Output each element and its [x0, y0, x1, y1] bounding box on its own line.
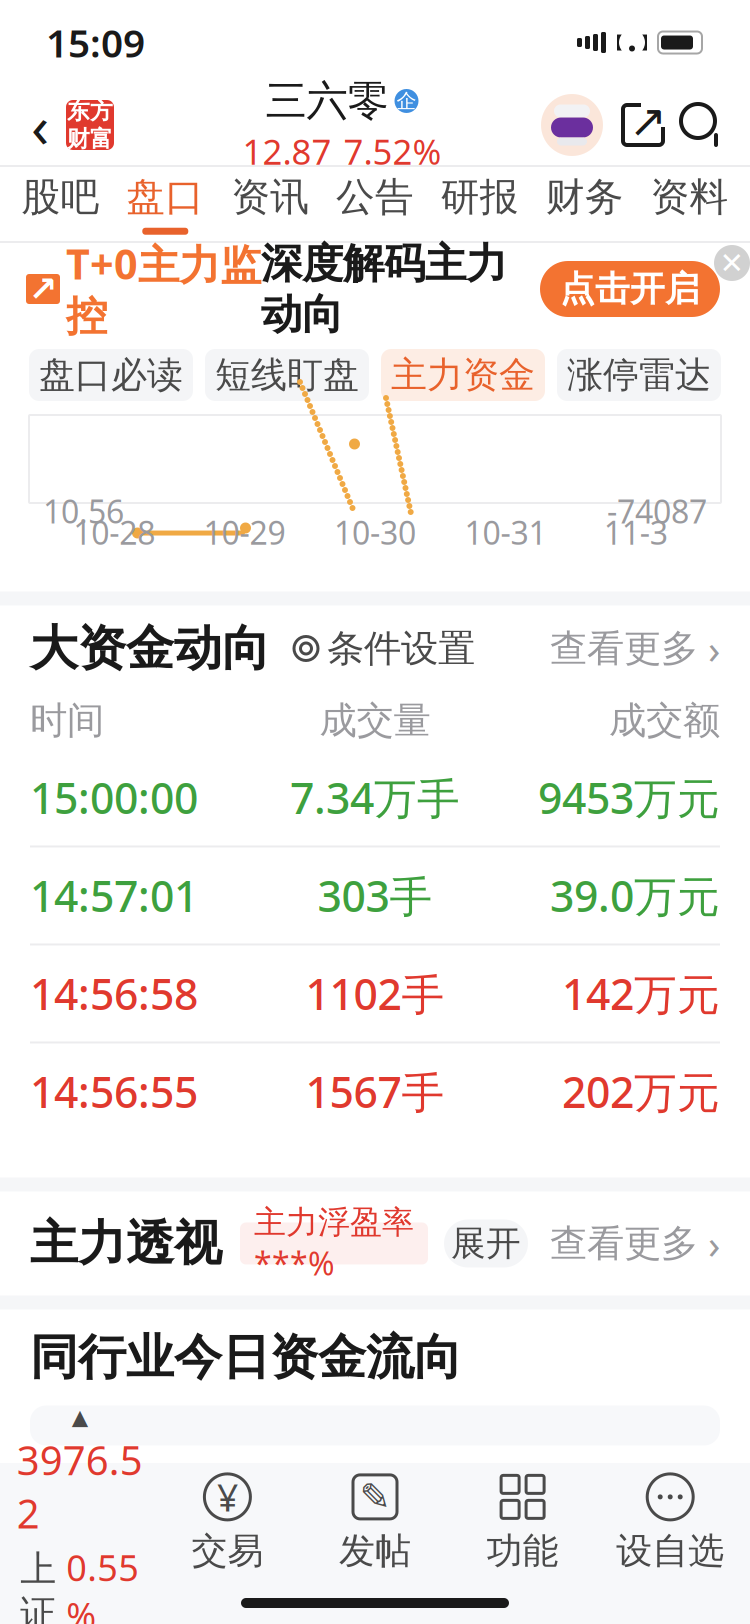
button[interactable]: 智能助手 — [540, 93, 604, 157]
staticText: 9453万元 — [538, 769, 720, 826]
staticText: 深度解码主力动向 — [261, 238, 507, 340]
staticText: 三六零 — [265, 76, 388, 126]
staticText: 资料 — [651, 173, 729, 221]
staticText: 盘口 — [126, 173, 204, 221]
staticText: 303手 — [317, 867, 432, 924]
button[interactable]: 盘口 — [113, 167, 218, 241]
staticText: 同行业今日资金流向 — [30, 1328, 462, 1387]
staticText: 企 — [396, 89, 416, 113]
button[interactable]: 展开 — [428, 1219, 528, 1267]
staticText: 东方 — [67, 97, 113, 125]
staticText: 10-28 — [73, 511, 155, 553]
staticText: 15:00:00 — [30, 769, 198, 826]
staticText: › — [708, 622, 720, 675]
staticText: ¥ — [217, 1472, 238, 1522]
button[interactable]: 分享 — [604, 102, 666, 148]
button[interactable]: 关闭 — [714, 245, 750, 281]
staticText: 15:09 — [46, 17, 145, 68]
button[interactable]: 条件设置 — [270, 626, 475, 671]
button[interactable]: ▲ — [6, 1466, 154, 1578]
staticText: 查看更多 — [550, 1221, 698, 1266]
button[interactable]: 股吧 — [8, 167, 113, 241]
staticText: 成交量 — [319, 698, 430, 743]
staticText: 7.34万手 — [290, 769, 460, 826]
staticText: ‹ — [31, 86, 49, 164]
staticText: 短线盯盘 — [215, 353, 359, 397]
button[interactable]: 涨停雷达 — [557, 349, 721, 401]
staticText: T+0主力监控 — [66, 236, 261, 342]
staticText: 上证 — [20, 1547, 56, 1624]
staticText: 1567手 — [305, 1063, 444, 1120]
staticText: 成交额 — [609, 698, 720, 743]
staticText: ↗ — [629, 95, 667, 147]
staticText: 1102手 — [305, 965, 444, 1022]
button[interactable]: 东方财富 — [62, 100, 114, 150]
staticText: 10.56 — [43, 490, 124, 532]
staticText: 设自选 — [616, 1529, 724, 1573]
staticText: › — [708, 1217, 720, 1270]
staticText: 大资金动向 — [30, 619, 270, 678]
button[interactable]: 功能 — [449, 1466, 596, 1578]
button[interactable]: 返回 — [18, 95, 62, 155]
button[interactable]: 设自选 — [596, 1466, 744, 1578]
staticText: ✎ — [359, 1476, 390, 1518]
staticText: 发帖 — [339, 1529, 411, 1573]
staticText: 14:57:01 — [30, 867, 198, 924]
staticText: 主力浮盈率***% — [254, 1203, 414, 1284]
staticText: -74087 — [607, 490, 707, 532]
staticText: 39.0万元 — [550, 867, 720, 924]
staticText: ▲ — [72, 1405, 88, 1429]
button[interactable]: 查看更多 — [550, 1217, 720, 1270]
staticText: 时间 — [30, 698, 104, 743]
staticText: 3976.52 — [17, 1433, 143, 1539]
staticText: 点击开启 — [560, 268, 700, 310]
staticText: 0.55% — [66, 1543, 139, 1624]
button[interactable]: ¥ — [154, 1466, 301, 1578]
staticText: 涨停雷达 — [567, 353, 711, 397]
button[interactable]: 资讯 — [218, 167, 323, 241]
button[interactable]: ✎ — [301, 1466, 449, 1578]
staticText: 12.87 — [242, 128, 331, 174]
staticText: 主力资金 — [391, 353, 535, 397]
staticText: 财富 — [67, 125, 113, 153]
staticText: 14:56:58 — [30, 965, 198, 1022]
staticText: 142万元 — [562, 965, 720, 1022]
button[interactable]: 短线盯盘 — [205, 349, 369, 401]
button[interactable]: 公告 — [323, 167, 427, 241]
staticText: ✕ — [719, 246, 744, 280]
button[interactable]: 资料 — [637, 167, 742, 241]
staticText: 盘口必读 — [39, 353, 183, 397]
staticText: 202万元 — [562, 1063, 720, 1120]
staticText: 查看更多 — [550, 626, 698, 671]
staticText: 财务 — [546, 173, 624, 221]
staticText: 7.52% — [343, 128, 441, 174]
staticText: 公告 — [336, 173, 414, 221]
staticText: 主力透视 — [30, 1214, 222, 1273]
button[interactable]: 盘口必读 — [29, 349, 193, 401]
button[interactable]: 主力资金 — [381, 349, 545, 401]
staticText: 10-30 — [334, 511, 416, 553]
button[interactable]: 点击开启 — [540, 261, 720, 317]
staticText: ↗ — [28, 269, 57, 309]
staticText: 研报 — [441, 173, 519, 221]
staticText: 10-29 — [204, 511, 286, 553]
button[interactable]: 研报 — [427, 167, 532, 241]
staticText: 股吧 — [21, 173, 99, 221]
staticText: 展开 — [451, 1222, 521, 1265]
staticText: 条件设置 — [327, 626, 475, 671]
staticText: 11-3 — [604, 511, 668, 553]
button[interactable]: 财务 — [532, 167, 637, 241]
button[interactable]: 查看更多 — [550, 622, 720, 675]
button[interactable]: 搜索 — [666, 101, 726, 149]
staticText: 10-31 — [464, 511, 546, 553]
staticText: 功能 — [487, 1529, 559, 1573]
staticText: 交易 — [191, 1529, 263, 1573]
staticText: 14:56:55 — [30, 1063, 198, 1120]
staticText: 资讯 — [231, 173, 309, 221]
